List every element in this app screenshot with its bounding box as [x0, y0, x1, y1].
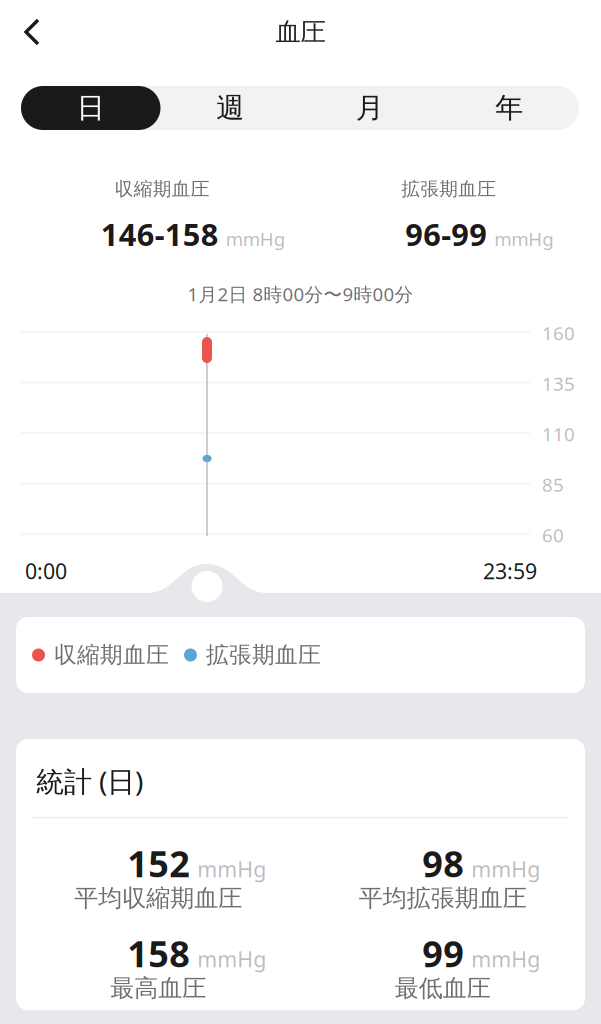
staticText: 99	[422, 929, 464, 977]
staticText: 収縮期血圧	[54, 641, 169, 669]
staticText: 血圧	[275, 16, 325, 47]
staticText: 23:59	[483, 557, 537, 585]
button[interactable]: 年	[439, 86, 579, 130]
staticText: 96-99	[405, 214, 487, 254]
staticText: 152	[127, 839, 190, 887]
staticText: 135	[542, 371, 575, 396]
staticText: mmHg	[226, 226, 285, 251]
staticText: 収縮期血圧	[115, 177, 210, 200]
staticText: 85	[542, 472, 564, 497]
staticText: mmHg	[197, 945, 266, 973]
staticText: 0:00	[25, 557, 67, 585]
staticText: 平均収縮期血圧	[74, 883, 242, 913]
staticText: 1月2日 8時00分〜9時00分	[187, 282, 413, 306]
staticText: mmHg	[471, 855, 540, 883]
staticText: 平均拡張期血圧	[359, 883, 527, 913]
staticText: 拡張期血圧	[206, 641, 321, 669]
staticText: 160	[542, 321, 575, 345]
staticText: mmHg	[471, 945, 540, 973]
staticText: 60	[542, 523, 564, 547]
staticText: 日	[77, 91, 105, 125]
staticText: 最低血圧	[395, 973, 491, 1003]
staticText: 158	[127, 929, 190, 977]
staticText: 98	[422, 839, 464, 887]
staticText: 拡張期血圧	[401, 177, 496, 200]
staticText: 週	[216, 91, 244, 125]
staticText: 最高血圧	[110, 973, 206, 1003]
staticText: 統計 (日)	[36, 762, 143, 800]
staticText: 146-158	[101, 214, 219, 254]
staticText: mmHg	[494, 226, 553, 251]
staticText: mmHg	[197, 855, 266, 883]
button[interactable]: 月	[300, 86, 439, 130]
staticText: 年	[495, 91, 523, 125]
button[interactable]: 戻る	[8, 6, 56, 58]
staticText: 110	[542, 422, 575, 446]
button[interactable]: 日	[21, 86, 160, 130]
button[interactable]: 週	[160, 86, 300, 130]
staticText: 月	[356, 91, 384, 125]
